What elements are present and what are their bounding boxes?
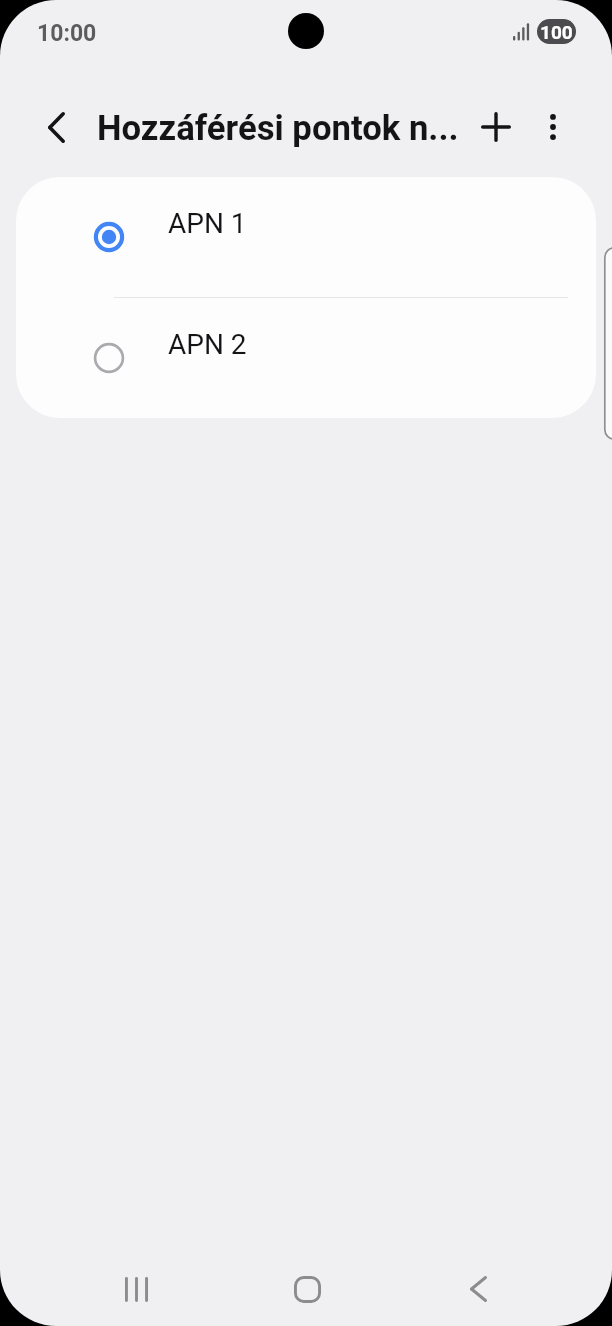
staticText: 100	[540, 21, 573, 43]
staticText: APN 2	[168, 328, 247, 361]
staticText: APN 1	[168, 207, 247, 240]
staticText: 10:00	[37, 20, 97, 47]
button[interactable]: Add access point	[465, 96, 527, 158]
staticText: Hozzáférési pontok n...	[97, 108, 459, 149]
button[interactable]: More options	[522, 96, 584, 158]
button[interactable]: Navigate up	[25, 96, 87, 158]
button[interactable]: Recent apps	[96, 1249, 176, 1326]
button[interactable]: APN 1	[16, 177, 596, 297]
button[interactable]: Back	[438, 1249, 518, 1326]
button[interactable]: APN 2	[16, 298, 596, 418]
button[interactable]: Home	[267, 1249, 347, 1326]
